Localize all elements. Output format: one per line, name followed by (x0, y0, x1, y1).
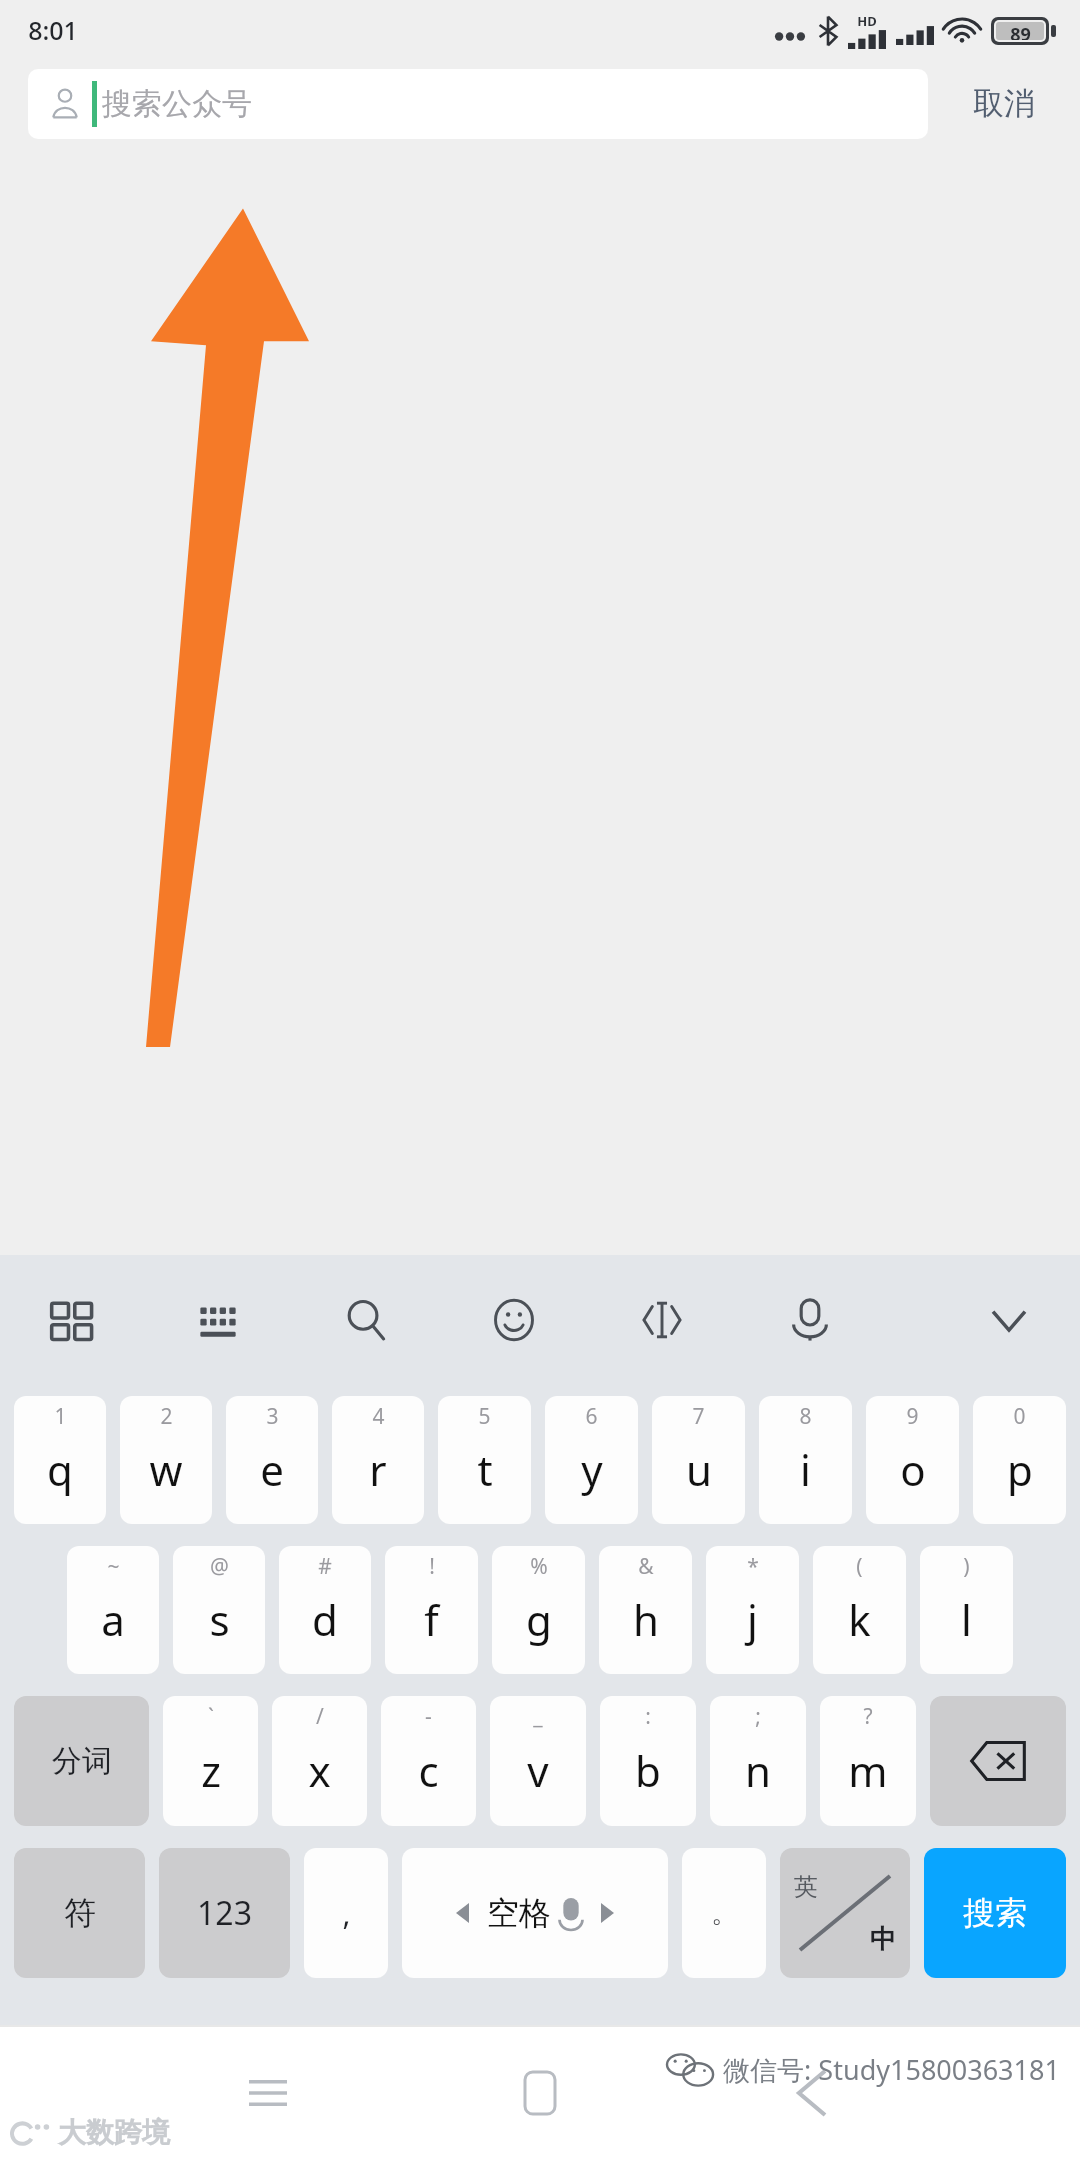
button[interactable]: : (600, 1696, 696, 1826)
staticText: k (848, 1591, 871, 1648)
button[interactable]: @ (173, 1546, 265, 1674)
button[interactable]: ! (385, 1546, 478, 1674)
button[interactable]: Move cursor (625, 1283, 699, 1357)
staticText: v (527, 1742, 549, 1799)
button[interactable]: 3 (226, 1396, 318, 1524)
button[interactable]: ) (920, 1546, 1013, 1674)
button[interactable]: _ (490, 1696, 586, 1826)
staticText: ? (863, 1702, 873, 1731)
staticText: ; (755, 1702, 761, 1731)
staticText: q (47, 1441, 73, 1498)
button[interactable]: 空格 (402, 1848, 668, 1978)
staticText: 5 (478, 1402, 491, 1431)
button[interactable]: Back (764, 2045, 860, 2141)
button[interactable]: ` (163, 1696, 258, 1826)
button[interactable]: 2 (120, 1396, 212, 1524)
staticText: HD (857, 12, 877, 30)
button[interactable]: # (279, 1546, 371, 1674)
button[interactable]: 4 (332, 1396, 424, 1524)
button[interactable]: % (492, 1546, 585, 1674)
staticText: 微信号: Study15800363181 (723, 2051, 1060, 2088)
staticText: 123 (197, 1891, 252, 1935)
staticText: & (638, 1552, 654, 1581)
button[interactable]: Emoji (477, 1283, 551, 1357)
staticText: e (260, 1441, 284, 1498)
staticText: t (477, 1441, 493, 1498)
button[interactable]: Switch language (780, 1848, 910, 1978)
button[interactable]: 取消 (928, 60, 1080, 147)
button[interactable]: 0 (973, 1396, 1066, 1524)
staticText: i (800, 1441, 811, 1498)
staticText: 中 (870, 1923, 896, 1956)
staticText: - (425, 1702, 432, 1731)
button[interactable]: Voice input (773, 1283, 847, 1357)
staticText: , (342, 1893, 351, 1934)
staticText: # (318, 1552, 332, 1581)
button[interactable]: Backspace (930, 1696, 1066, 1826)
staticText: ) (963, 1552, 970, 1581)
staticText: * (747, 1552, 759, 1581)
staticText: _ (533, 1702, 543, 1731)
button[interactable]: 9 (866, 1396, 959, 1524)
button[interactable]: Panels (34, 1283, 108, 1357)
staticText: 空格 (487, 1893, 551, 1933)
staticText: 2 (160, 1402, 173, 1431)
staticText: y (581, 1441, 603, 1498)
staticText: s (209, 1591, 230, 1648)
button[interactable]: 分词 (14, 1696, 149, 1826)
staticText: o (900, 1441, 926, 1498)
staticText: u (686, 1441, 712, 1498)
button[interactable]: Home (492, 2045, 588, 2141)
button[interactable]: 123 (159, 1848, 290, 1978)
staticText: n (745, 1742, 771, 1799)
staticText: c (418, 1742, 439, 1799)
staticText: 9 (906, 1402, 919, 1431)
button[interactable]: 5 (438, 1396, 531, 1524)
button[interactable]: 搜索 (924, 1848, 1066, 1978)
button[interactable]: Hide keyboard (972, 1283, 1046, 1357)
staticText: 符 (64, 1893, 96, 1933)
staticText: x (308, 1742, 331, 1799)
staticText: p (1007, 1441, 1033, 1498)
staticText: r (369, 1441, 387, 1498)
staticText: 搜索 (963, 1893, 1027, 1933)
staticText: 3 (266, 1402, 279, 1431)
button[interactable]: & (599, 1546, 692, 1674)
staticText: 8:01 (28, 13, 78, 47)
staticText: a (101, 1591, 125, 1648)
button[interactable]: * (706, 1546, 799, 1674)
staticText: ` (208, 1702, 214, 1731)
button[interactable]: 。 (682, 1848, 766, 1978)
staticText: 7 (692, 1402, 705, 1431)
staticText: 1 (54, 1402, 67, 1431)
button[interactable]: 7 (652, 1396, 745, 1524)
button[interactable]: ? (820, 1696, 916, 1826)
staticText: 分词 (52, 1742, 112, 1780)
button[interactable]: Keyboard (181, 1283, 255, 1357)
button[interactable]: 6 (545, 1396, 638, 1524)
button[interactable]: 1 (14, 1396, 106, 1524)
staticText: 0 (1013, 1402, 1026, 1431)
staticText: 大数跨境 (58, 2115, 170, 2150)
staticText: j (747, 1591, 758, 1648)
staticText: / (316, 1702, 324, 1731)
staticText: m (848, 1742, 888, 1799)
staticText: % (530, 1552, 548, 1581)
button[interactable]: - (381, 1696, 476, 1826)
button[interactable]: / (272, 1696, 367, 1826)
button[interactable]: Recents (220, 2045, 316, 2141)
button[interactable]: ; (710, 1696, 806, 1826)
button[interactable]: 搜索公众号 (28, 69, 928, 139)
button[interactable]: 8 (759, 1396, 852, 1524)
staticText: f (424, 1591, 439, 1648)
button[interactable]: Search (329, 1283, 403, 1357)
staticText: w (149, 1441, 183, 1498)
button[interactable]: 符 (14, 1848, 145, 1978)
button[interactable]: ( (813, 1546, 906, 1674)
staticText: b (635, 1742, 661, 1799)
button[interactable]: , (304, 1848, 388, 1978)
button[interactable]: ~ (67, 1546, 159, 1674)
staticText: g (526, 1591, 552, 1648)
staticText: l (961, 1591, 972, 1648)
staticText: z (201, 1742, 221, 1799)
